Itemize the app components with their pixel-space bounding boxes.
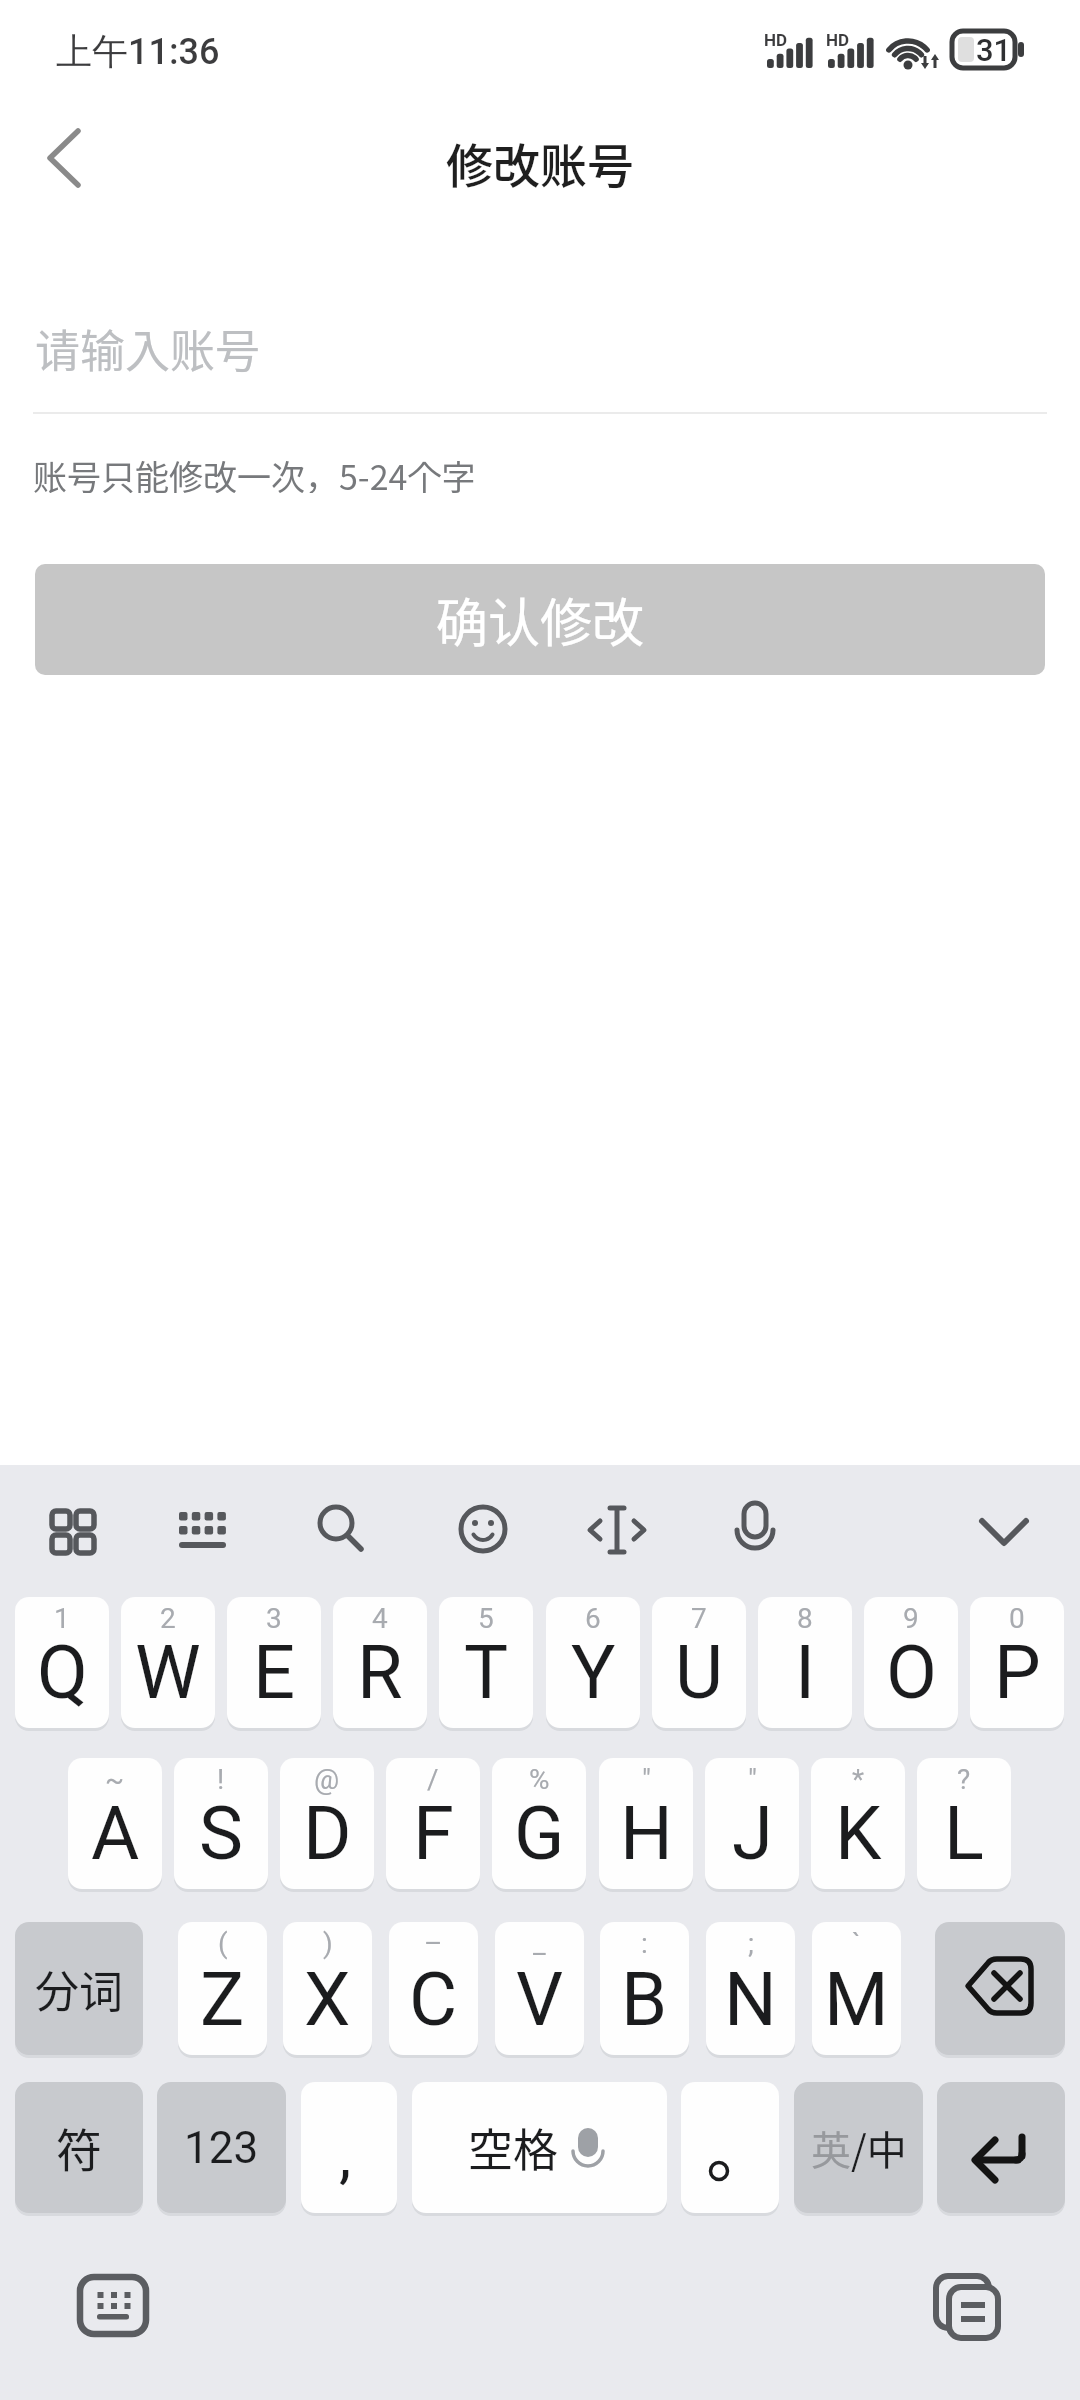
button[interactable] (28, 118, 108, 198)
staticText: HD (764, 30, 788, 50)
staticText: 符 (56, 2114, 102, 2181)
button[interactable]: ? (917, 1758, 1011, 1889)
staticText: 8 (797, 1602, 813, 1635)
staticText: V (516, 1956, 564, 2043)
staticText: D (303, 1790, 352, 1877)
staticText: 空格 (468, 2115, 559, 2180)
button[interactable] (38, 1495, 108, 1565)
button[interactable] (681, 2082, 779, 2213)
staticText: T (464, 1629, 509, 1716)
staticText: ; (748, 1927, 754, 1960)
button[interactable] (448, 1495, 518, 1565)
staticText: X (304, 1956, 351, 2043)
button[interactable]: 9 (864, 1597, 958, 1728)
button[interactable]: % (492, 1758, 586, 1889)
button[interactable]: , (301, 2082, 397, 2213)
staticText: ) (323, 1927, 333, 1960)
button[interactable] (582, 1495, 652, 1565)
staticText: 分词 (35, 1957, 123, 2021)
button[interactable]: 123 (157, 2082, 286, 2213)
button[interactable]: 4 (333, 1597, 427, 1728)
staticText: * (852, 1763, 865, 1796)
staticText: H (620, 1790, 673, 1877)
staticText: 5 (478, 1602, 494, 1635)
staticText: A (91, 1790, 140, 1877)
button[interactable] (720, 1495, 790, 1565)
button[interactable]: 3 (227, 1597, 321, 1728)
staticText: , (339, 2119, 352, 2192)
button[interactable]: * (811, 1758, 905, 1889)
staticText: E (253, 1629, 296, 1716)
staticText: 上午11:36 (56, 29, 220, 74)
staticText: Q (37, 1629, 88, 1716)
button[interactable]: 7 (652, 1597, 746, 1728)
staticText: – (424, 1927, 443, 1960)
staticText: 3 (266, 1602, 282, 1635)
staticText: 1 (54, 1602, 70, 1635)
staticText: I (795, 1629, 816, 1716)
staticText: O (886, 1629, 937, 1716)
button[interactable] (305, 1495, 375, 1565)
staticText: 请输入账号 (35, 316, 261, 376)
staticText: ( (218, 1927, 228, 1960)
button[interactable]: ` (812, 1922, 901, 2055)
button[interactable]: : (600, 1922, 689, 2055)
staticText: ~ (105, 1763, 125, 1796)
staticText: 英 (811, 2119, 851, 2177)
button[interactable]: 8 (758, 1597, 852, 1728)
staticText: N (724, 1956, 777, 2043)
staticText: /中 (851, 2119, 907, 2177)
button[interactable]: 6 (546, 1597, 640, 1728)
staticText: 修改账号 (446, 128, 634, 190)
button[interactable] (970, 1495, 1040, 1565)
button[interactable]: 2 (121, 1597, 215, 1728)
staticText: 4 (372, 1602, 388, 1635)
staticText: Y (571, 1629, 616, 1716)
staticText: L (944, 1790, 984, 1877)
button[interactable]: 1 (15, 1597, 109, 1728)
staticText: R (357, 1629, 403, 1716)
staticText: ? (957, 1763, 971, 1796)
staticText: 9 (903, 1602, 919, 1635)
button[interactable]: ; (706, 1922, 795, 2055)
staticText: : (641, 1927, 648, 1960)
staticText: % (529, 1763, 550, 1796)
staticText: " (642, 1763, 651, 1796)
staticText: 账号只能修改一次，5-24个字 (33, 451, 476, 493)
button[interactable] (935, 1922, 1065, 2055)
button[interactable]: – (389, 1922, 478, 2055)
button[interactable]: 5 (439, 1597, 533, 1728)
button[interactable]: 0 (970, 1597, 1064, 1728)
button[interactable] (920, 2261, 1020, 2343)
staticText: 0 (1009, 1602, 1025, 1635)
staticText: 确认修改 (436, 582, 645, 657)
staticText: J (732, 1790, 773, 1877)
button[interactable] (64, 2263, 164, 2343)
button[interactable]: ~ (68, 1758, 162, 1889)
staticText: F (413, 1790, 454, 1877)
button[interactable]: ( (178, 1922, 267, 2055)
button[interactable]: 英 (794, 2082, 923, 2213)
staticText: / (427, 1763, 439, 1796)
button[interactable]: ) (283, 1922, 372, 2055)
button[interactable]: _ (495, 1922, 584, 2055)
staticText: P (994, 1629, 1041, 1716)
staticText: @ (314, 1763, 340, 1796)
button[interactable]: 分词 (15, 1922, 143, 2055)
staticText: 123 (184, 2122, 259, 2174)
button[interactable]: @ (280, 1758, 374, 1889)
button[interactable]: 确认修改 (35, 564, 1045, 675)
button[interactable]: 符 (15, 2082, 143, 2213)
button[interactable] (937, 2082, 1065, 2213)
staticText: HD (826, 30, 850, 50)
staticText: 2 (160, 1602, 176, 1635)
button[interactable]: " (705, 1758, 799, 1889)
staticText: 31 (976, 32, 1012, 68)
button[interactable]: ! (174, 1758, 268, 1889)
button[interactable] (165, 1495, 235, 1565)
staticText: S (199, 1790, 243, 1877)
button[interactable]: " (599, 1758, 693, 1889)
staticText: M (824, 1956, 889, 2043)
button[interactable]: 空格 (412, 2082, 667, 2213)
button[interactable]: / (386, 1758, 480, 1889)
